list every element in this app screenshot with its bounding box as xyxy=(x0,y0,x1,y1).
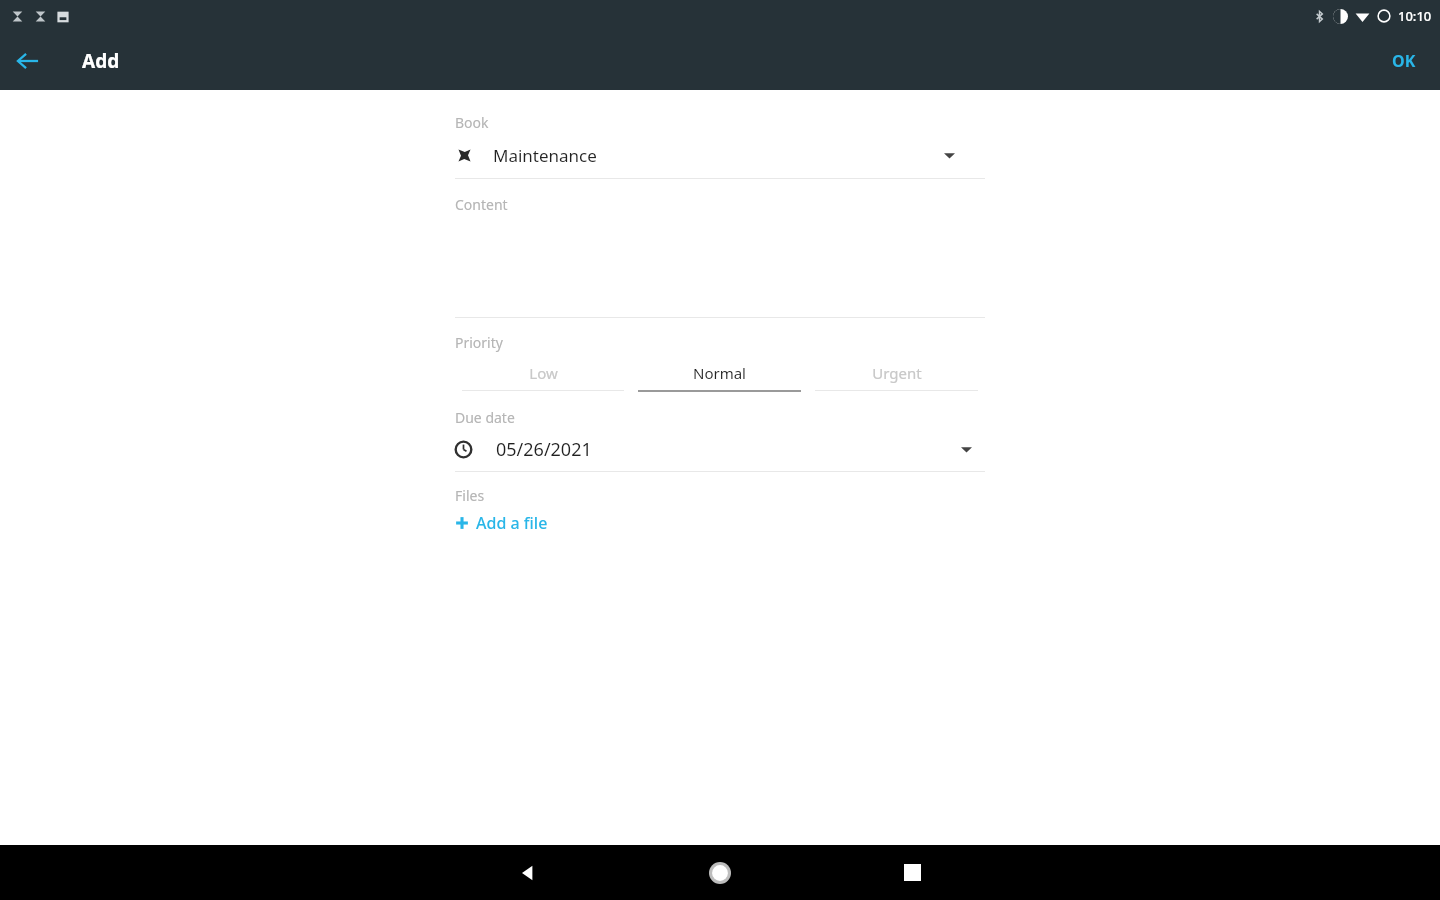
staticText: Low xyxy=(529,363,558,383)
button[interactable]: Back xyxy=(480,845,576,900)
button[interactable]: Back xyxy=(0,33,56,89)
staticText: Book xyxy=(455,113,489,132)
button[interactable]: OK xyxy=(1380,42,1428,80)
staticText: Due date xyxy=(455,408,515,427)
staticText: OK xyxy=(1392,50,1416,72)
button[interactable]: Urgent xyxy=(808,356,985,391)
staticText: 10:10 xyxy=(1398,7,1432,25)
staticText: 05/26/2021 xyxy=(496,437,592,462)
button[interactable]: Normal xyxy=(631,356,808,392)
button[interactable]: Maintenance xyxy=(455,132,985,178)
staticText: Urgent xyxy=(872,363,922,383)
staticText: Maintenance xyxy=(493,144,597,167)
staticText: Content xyxy=(455,195,508,214)
staticText: Add a file xyxy=(476,512,548,534)
staticText: Files xyxy=(455,486,485,505)
button[interactable]: Home xyxy=(672,845,768,900)
button[interactable]: Low xyxy=(455,356,631,391)
staticText: Priority xyxy=(455,333,503,352)
button[interactable]: 05/26/2021 xyxy=(455,427,985,471)
button[interactable]: Add a file xyxy=(455,509,548,537)
staticText: Add xyxy=(82,48,120,74)
staticText: Normal xyxy=(693,363,746,383)
button[interactable]: Recent apps xyxy=(864,845,960,900)
